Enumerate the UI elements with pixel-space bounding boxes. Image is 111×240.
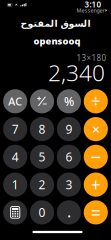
staticText: + (91, 173, 101, 196)
button[interactable]: × (84, 117, 108, 141)
button[interactable]: ÷ (84, 89, 108, 113)
staticText: 6 (65, 149, 72, 165)
button[interactable]: 5 (30, 145, 54, 169)
button[interactable]: % (57, 89, 81, 113)
button[interactable]: 9 (57, 117, 81, 141)
button[interactable]: 6 (57, 145, 81, 169)
staticText: 3:10 (84, 0, 101, 10)
staticText: 9 (65, 121, 72, 137)
staticText: السوق المفتوح (20, 18, 90, 29)
staticText: 0 (38, 204, 45, 220)
staticText: 7 (12, 121, 19, 137)
staticText: 8 (38, 121, 45, 137)
staticText: 2 (38, 177, 45, 192)
staticText: 2,340 (48, 57, 105, 87)
button[interactable]: 7 (3, 117, 27, 141)
button[interactable]: 0 (30, 200, 54, 224)
button[interactable]: 4 (3, 145, 27, 169)
staticText: ÷ (91, 89, 101, 112)
staticText: × (92, 119, 100, 139)
staticText: AC (8, 94, 22, 108)
button[interactable]: 8 (30, 117, 54, 141)
button[interactable]: = (84, 200, 108, 224)
staticText: % (64, 93, 74, 109)
staticText: 1 (12, 177, 19, 192)
button[interactable]: 3 (57, 172, 81, 197)
staticText: 5 (38, 149, 45, 165)
button[interactable]: . (57, 200, 81, 224)
staticText: 13×180 (76, 53, 106, 63)
staticText: 4 (12, 149, 19, 165)
staticText: = (91, 201, 101, 224)
staticText: 3 (65, 177, 72, 192)
button[interactable]: Toggle sign (30, 89, 54, 113)
staticText: opensooq (33, 35, 80, 47)
staticText: − (90, 144, 101, 169)
button[interactable]: − (84, 145, 108, 169)
button[interactable]: + (84, 172, 108, 197)
button[interactable]: 2 (30, 172, 54, 197)
button[interactable]: AC (3, 89, 27, 113)
staticText: Messenger (77, 7, 105, 14)
button[interactable]: 1 (3, 172, 27, 197)
button[interactable]: Scientific calculator (3, 200, 27, 224)
staticText: . (67, 201, 71, 222)
